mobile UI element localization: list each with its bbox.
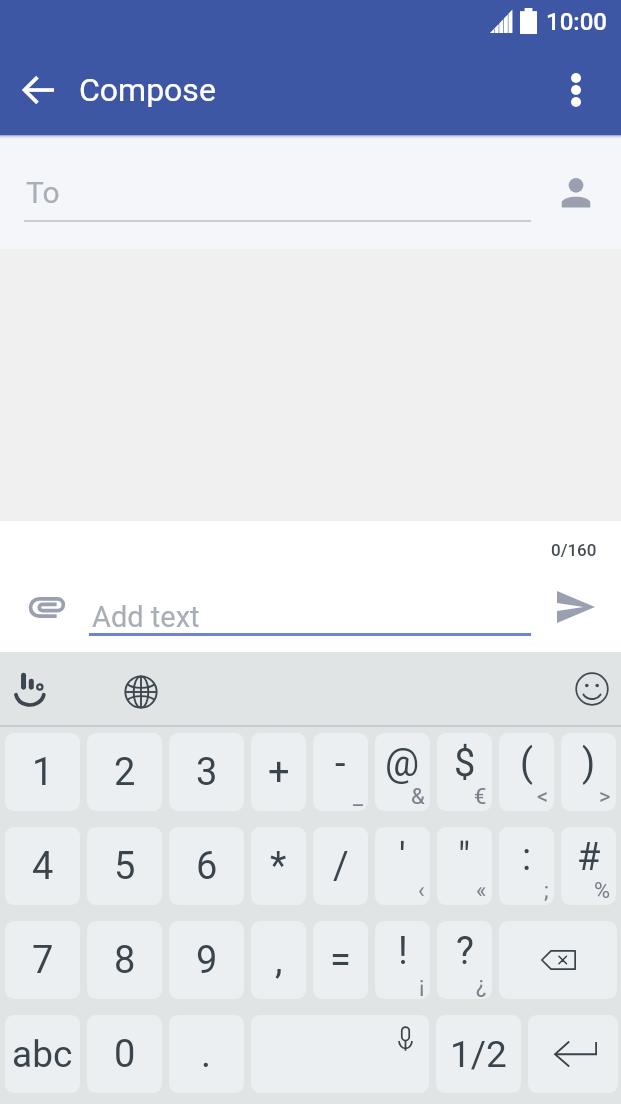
- staticText: 1/2: [450, 1033, 507, 1076]
- button[interactable]: 8: [87, 921, 162, 999]
- button[interactable]: -: [313, 733, 368, 811]
- staticText: €: [474, 784, 487, 810]
- button[interactable]: Emoji: [563, 658, 621, 720]
- staticText: &: [411, 784, 425, 810]
- staticText: 0: [114, 1032, 136, 1077]
- staticText: %: [594, 878, 611, 904]
- button[interactable]: +: [251, 733, 306, 811]
- staticText: -: [335, 741, 346, 786]
- staticText: ‹: [418, 878, 425, 904]
- button[interactable]: #: [561, 827, 616, 905]
- button[interactable]: Back: [8, 67, 69, 113]
- staticText: .: [201, 1032, 212, 1077]
- staticText: «: [476, 878, 487, 904]
- staticText: ?: [456, 929, 474, 974]
- staticText: 7: [32, 938, 54, 983]
- button[interactable]: Voice input: [251, 1015, 429, 1093]
- button[interactable]: ?: [437, 921, 492, 999]
- staticText: <: [537, 784, 549, 810]
- button[interactable]: /: [313, 827, 368, 905]
- staticText: $: [454, 741, 476, 786]
- button[interactable]: Send: [543, 582, 608, 632]
- staticText: 3: [196, 750, 218, 795]
- staticText: /: [333, 844, 349, 889]
- button[interactable]: 3: [169, 733, 244, 811]
- staticText: *: [270, 844, 287, 889]
- staticText: 10:00: [546, 8, 607, 36]
- staticText: >: [599, 784, 611, 810]
- button[interactable]: 5: [87, 827, 162, 905]
- button[interactable]: !: [375, 921, 430, 999]
- staticText: ;: [544, 878, 549, 904]
- button[interactable]: Attach file: [14, 580, 79, 635]
- staticText: =: [330, 938, 351, 983]
- staticText: ¿: [476, 972, 487, 998]
- button[interactable]: (: [499, 733, 554, 811]
- staticText: _: [353, 784, 363, 810]
- button[interactable]: ): [561, 733, 616, 811]
- button[interactable]: Enter: [528, 1015, 618, 1093]
- staticText: 0/160: [551, 540, 597, 560]
- staticText: 8: [114, 938, 136, 983]
- staticText: 5: [114, 844, 136, 889]
- staticText: +: [268, 750, 290, 795]
- staticText: ¡: [419, 972, 425, 998]
- button[interactable]: 4: [5, 827, 80, 905]
- staticText: 4: [32, 844, 54, 889]
- button[interactable]: More options: [546, 60, 606, 120]
- staticText: 6: [196, 844, 218, 889]
- staticText: 2: [114, 750, 136, 795]
- button[interactable]: 1: [5, 733, 80, 811]
- button[interactable]: abc: [5, 1015, 80, 1093]
- staticText: :: [522, 835, 532, 880]
- button[interactable]: =: [313, 921, 368, 999]
- button[interactable]: 6: [169, 827, 244, 905]
- button[interactable]: .: [169, 1015, 244, 1093]
- staticText: !: [398, 929, 408, 974]
- staticText: To: [26, 175, 60, 210]
- staticText: ": [458, 835, 471, 880]
- button[interactable]: ,: [251, 921, 306, 999]
- staticText: abc: [12, 1033, 73, 1076]
- staticText: ): [582, 741, 596, 786]
- button[interactable]: @: [375, 733, 430, 811]
- staticText: Add text: [92, 600, 200, 634]
- staticText: Compose: [79, 71, 216, 109]
- button[interactable]: Switch language: [112, 661, 170, 723]
- button[interactable]: :: [499, 827, 554, 905]
- staticText: @: [385, 741, 420, 786]
- button[interactable]: Keyboard settings: [1, 658, 59, 720]
- staticText: ,: [275, 938, 283, 983]
- staticText: ': [399, 835, 406, 880]
- button[interactable]: 7: [5, 921, 80, 999]
- button[interactable]: $: [437, 733, 492, 811]
- staticText: 1: [32, 750, 54, 795]
- button[interactable]: Choose contact: [545, 162, 606, 223]
- button[interactable]: 9: [169, 921, 244, 999]
- staticText: #: [577, 835, 601, 880]
- button[interactable]: ": [437, 827, 492, 905]
- button[interactable]: 2: [87, 733, 162, 811]
- staticText: (: [520, 741, 534, 786]
- button[interactable]: *: [251, 827, 306, 905]
- button[interactable]: 0: [87, 1015, 162, 1093]
- button[interactable]: ': [375, 827, 430, 905]
- button[interactable]: 1/2: [436, 1015, 521, 1093]
- staticText: 9: [196, 938, 218, 983]
- button[interactable]: Backspace: [499, 921, 617, 999]
